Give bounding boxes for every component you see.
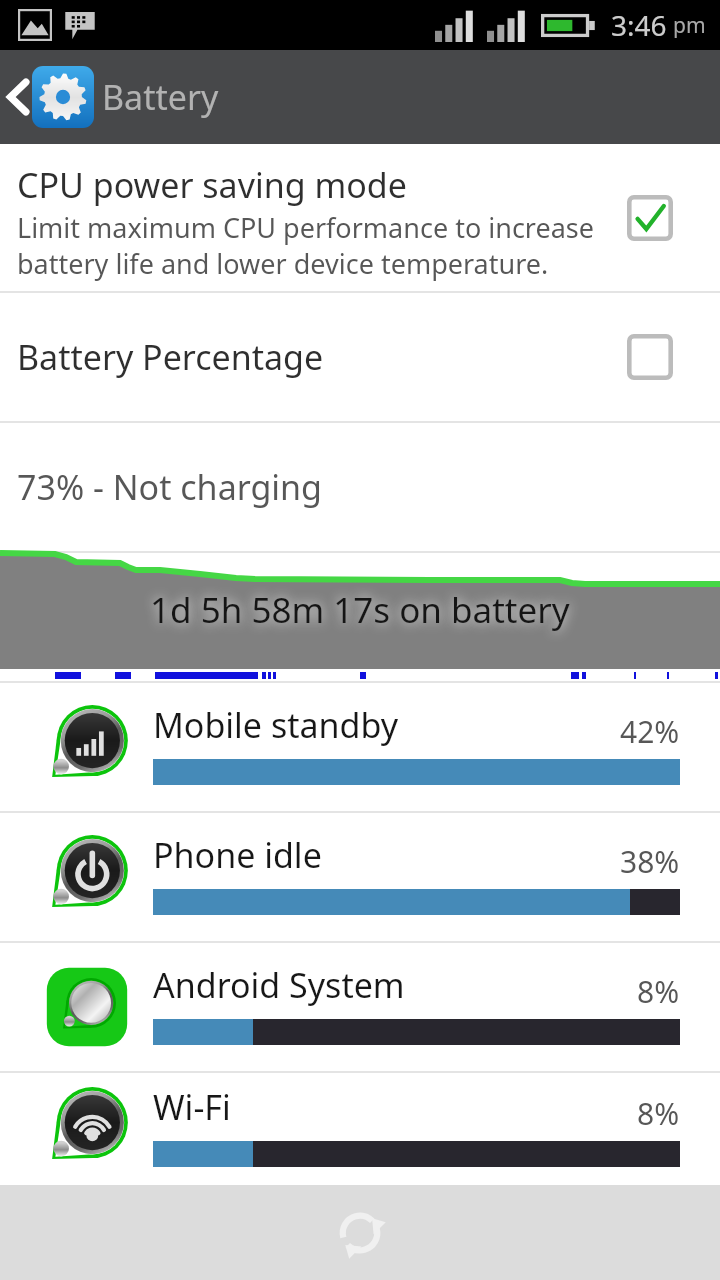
button[interactable]: Phone idle [0, 813, 720, 941]
staticText: Wi-Fi [153, 1084, 637, 1130]
button[interactable]: Checked [627, 195, 673, 241]
staticText: Limit maximum CPU performance to increas… [17, 209, 594, 282]
staticText: 8% [637, 971, 680, 1012]
button[interactable]: Wi-Fi [0, 1073, 720, 1185]
staticText: 38% [620, 841, 680, 882]
staticText: Android System [153, 962, 637, 1008]
staticText: pm [673, 11, 706, 40]
staticText: 1d 5h 58m 17s on battery [150, 586, 570, 634]
staticText: 8% [637, 1093, 680, 1134]
staticText: Mobile standby [153, 702, 620, 748]
button[interactable]: Battery Percentage [0, 293, 720, 421]
staticText: 73% - Not charging [17, 464, 323, 510]
staticText: CPU power saving mode [17, 162, 407, 208]
staticText: 3:46 [611, 6, 667, 44]
button[interactable]: Back [0, 50, 720, 144]
staticText: Battery Percentage [17, 334, 627, 380]
staticText: Phone idle [153, 832, 620, 878]
button[interactable]: CPU power saving mode [0, 144, 720, 291]
button[interactable]: Unchecked [627, 334, 673, 380]
button[interactable]: Refresh [324, 1197, 396, 1269]
staticText: 42% [620, 711, 680, 752]
button[interactable]: Mobile standby [0, 683, 720, 811]
button[interactable]: Android System [0, 943, 720, 1071]
staticText: Battery [102, 74, 219, 120]
